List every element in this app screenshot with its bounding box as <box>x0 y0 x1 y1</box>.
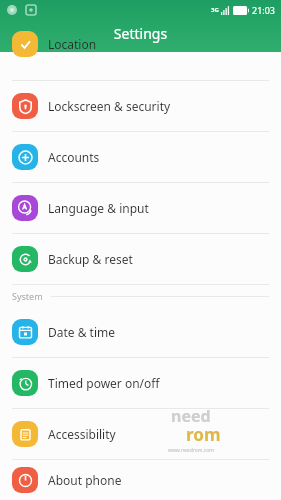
staticText: Location <box>48 36 97 52</box>
staticText: Date & time <box>48 324 116 340</box>
staticText: Accounts <box>48 149 100 165</box>
staticText: System <box>12 290 43 302</box>
staticText: Backup & reset <box>48 251 133 267</box>
staticText: rom <box>186 423 221 446</box>
button[interactable]: Language & input <box>0 183 281 233</box>
button[interactable]: Timed power on/off <box>0 358 281 408</box>
staticText: www.needrom.com <box>168 447 214 454</box>
button[interactable]: Date & time <box>0 307 281 357</box>
staticText: 21:03 <box>252 4 276 16</box>
staticText: Lockscreen & security <box>48 98 171 114</box>
button[interactable]: Backup & reset <box>0 234 281 284</box>
button[interactable]: Location <box>0 52 281 80</box>
staticText: Timed power on/off <box>48 375 160 391</box>
button[interactable]: Accessibility <box>0 409 281 459</box>
button[interactable]: Accounts <box>0 132 281 182</box>
staticText: About phone <box>48 472 122 488</box>
staticText: Settings <box>0 24 281 43</box>
button[interactable]: Lockscreen & security <box>0 81 281 131</box>
staticText: Accessibility <box>48 426 116 442</box>
button[interactable]: About phone <box>0 460 281 500</box>
staticText: 3G <box>211 6 219 14</box>
staticText: need <box>171 405 211 427</box>
button[interactable]: Location <box>0 30 281 58</box>
staticText: Language & input <box>48 200 149 216</box>
